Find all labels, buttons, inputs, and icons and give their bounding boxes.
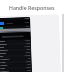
- button[interactable]: [0, 39, 31, 43]
- button[interactable]: [0, 69, 32, 72]
- button[interactable]: [0, 48, 31, 52]
- button[interactable]: [0, 45, 31, 49]
- button[interactable]: [0, 63, 32, 67]
- button[interactable]: [0, 20, 30, 26]
- button[interactable]: [0, 54, 31, 58]
- staticText: Handle Responses: [9, 4, 55, 11]
- button[interactable]: [0, 25, 30, 29]
- button[interactable]: [2, 35, 24, 38]
- button[interactable]: [0, 51, 31, 55]
- button[interactable]: [0, 28, 31, 32]
- button[interactable]: [0, 66, 32, 70]
- button[interactable]: [0, 60, 32, 64]
- button[interactable]: [0, 57, 32, 61]
- button[interactable]: Handle Responses: [0, 0, 64, 14]
- button[interactable]: [0, 42, 31, 46]
